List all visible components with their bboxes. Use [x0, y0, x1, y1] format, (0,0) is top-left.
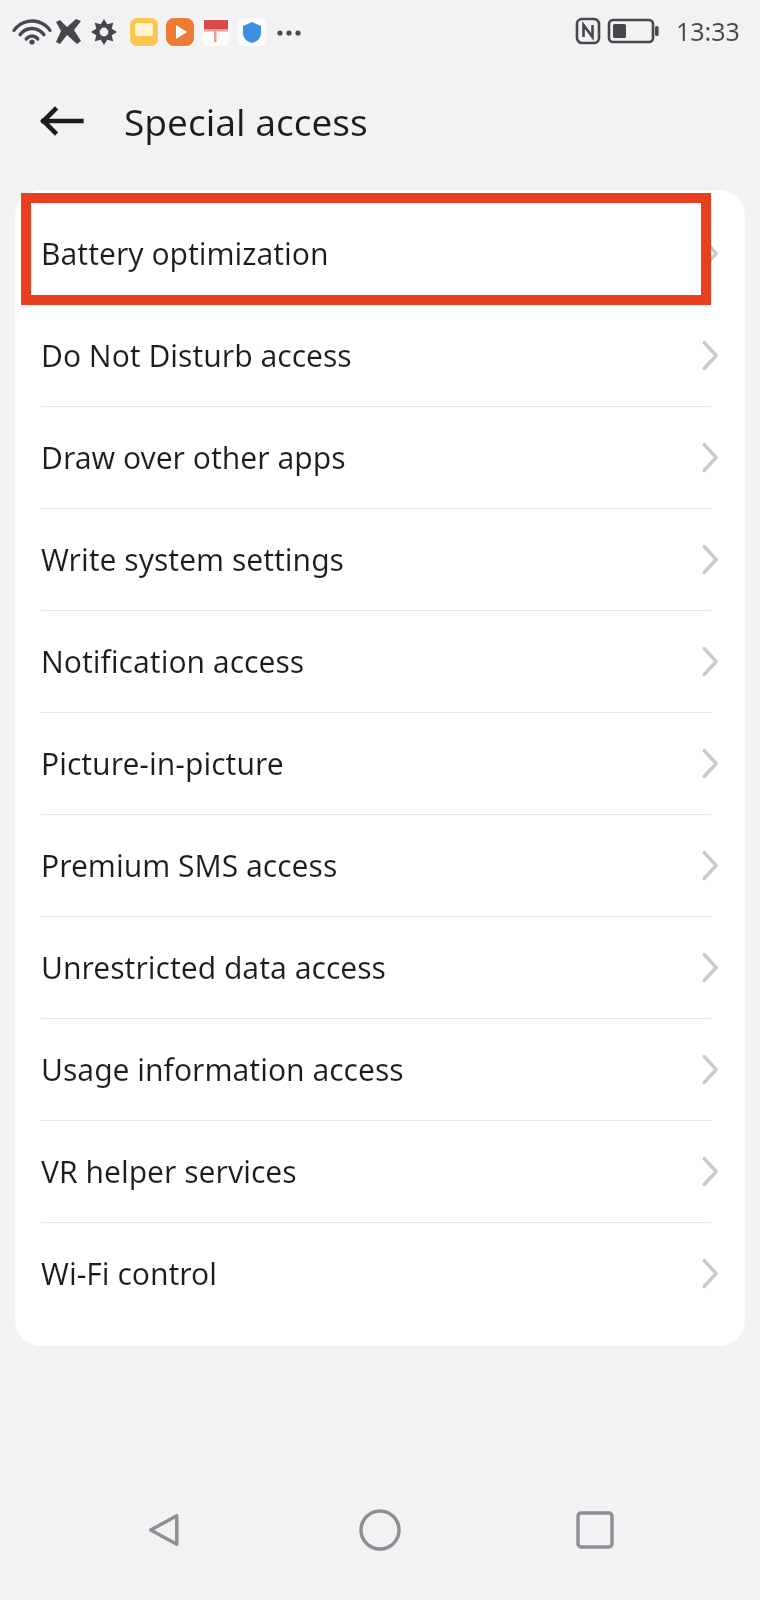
staticText: 13:33 — [676, 14, 740, 48]
staticText: Special access — [124, 96, 368, 146]
staticText: Write system settings — [41, 539, 685, 580]
button[interactable]: Back — [22, 81, 102, 161]
button[interactable]: Back — [115, 1480, 215, 1580]
staticText: Notification access — [41, 641, 685, 682]
staticText: Unrestricted data access — [41, 947, 685, 988]
button[interactable]: Unrestricted data access — [15, 917, 745, 1018]
button[interactable]: Usage information access — [15, 1019, 745, 1120]
staticText: Usage information access — [41, 1049, 685, 1090]
button[interactable]: Premium SMS access — [15, 815, 745, 916]
staticText: Wi-Fi control — [41, 1253, 685, 1294]
button[interactable]: Notification access — [15, 611, 745, 712]
button[interactable]: Wi-Fi control — [15, 1223, 745, 1324]
staticText: Premium SMS access — [41, 845, 685, 886]
staticText: Do Not Disturb access — [41, 335, 685, 376]
staticText: Picture-in-picture — [41, 743, 685, 784]
button[interactable]: Recents — [545, 1480, 645, 1580]
button[interactable]: Do Not Disturb access — [15, 305, 745, 406]
staticText: Draw over other apps — [41, 437, 685, 478]
staticText: VR helper services — [41, 1151, 685, 1192]
staticText: Battery optimization — [41, 233, 685, 274]
button[interactable]: Draw over other apps — [15, 407, 745, 508]
button[interactable]: Battery optimization — [15, 203, 745, 304]
button[interactable]: VR helper services — [15, 1121, 745, 1222]
button[interactable]: Picture-in-picture — [15, 713, 745, 814]
button[interactable]: Home — [330, 1480, 430, 1580]
button[interactable]: Write system settings — [15, 509, 745, 610]
